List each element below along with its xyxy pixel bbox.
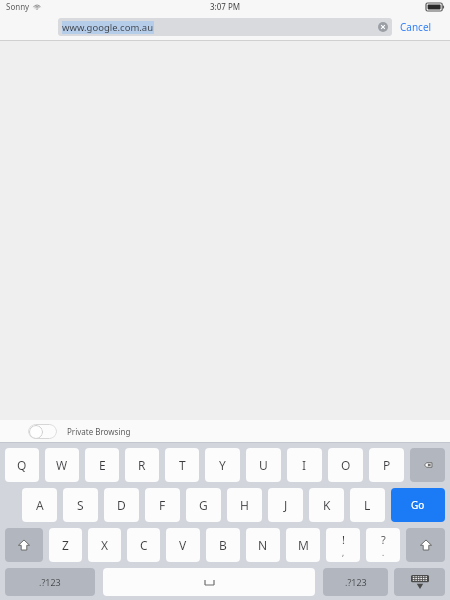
staticText: Z xyxy=(62,537,69,553)
button[interactable]: G xyxy=(186,488,221,522)
staticText: 3:07 PM xyxy=(210,1,241,12)
staticText: J xyxy=(284,497,288,513)
button[interactable]: E xyxy=(85,448,119,482)
staticText: . xyxy=(382,547,385,558)
button[interactable]: .?123 xyxy=(5,568,95,596)
staticText: G xyxy=(199,497,208,513)
button[interactable]: Clear text xyxy=(378,22,388,32)
button[interactable]: W xyxy=(45,448,79,482)
button[interactable]: Q xyxy=(5,448,39,482)
button[interactable]: K xyxy=(309,488,344,522)
staticText: Private Browsing xyxy=(67,426,131,437)
button[interactable]: X xyxy=(88,528,121,562)
staticText: H xyxy=(240,497,249,513)
button[interactable]: C xyxy=(127,528,160,562)
button[interactable]: Go xyxy=(391,488,445,522)
button[interactable]: V xyxy=(166,528,200,562)
button[interactable]: Private Browsing toggle xyxy=(28,424,57,439)
button[interactable]: J xyxy=(268,488,303,522)
button[interactable]: A xyxy=(22,488,57,522)
staticText: X xyxy=(101,537,109,553)
staticText: , xyxy=(342,547,345,558)
staticText: R xyxy=(138,457,146,473)
button[interactable]: L xyxy=(350,488,385,522)
button[interactable]: www.google.com.au xyxy=(58,18,392,36)
staticText: O xyxy=(341,457,351,473)
staticText: ! xyxy=(342,532,345,547)
staticText: V xyxy=(179,537,187,553)
button[interactable]: H xyxy=(227,488,262,522)
staticText: Sonny xyxy=(6,1,30,12)
staticText: U xyxy=(259,457,268,473)
button[interactable]: Space xyxy=(103,568,315,596)
button[interactable]: U xyxy=(246,448,281,482)
button[interactable]: M xyxy=(286,528,320,562)
button[interactable]: Z xyxy=(49,528,82,562)
button[interactable]: N xyxy=(246,528,280,562)
staticText: Go xyxy=(411,498,425,512)
button[interactable]: ? xyxy=(366,528,400,562)
staticText: M xyxy=(298,537,309,553)
button[interactable]: S xyxy=(63,488,98,522)
button[interactable]: Delete xyxy=(410,448,445,482)
staticText: P xyxy=(383,457,391,473)
staticText: .?123 xyxy=(39,576,61,588)
staticText: W xyxy=(56,457,68,473)
button[interactable]: Shift xyxy=(5,528,43,562)
staticText: S xyxy=(77,497,84,513)
staticText: Y xyxy=(219,457,226,473)
staticText: F xyxy=(159,497,166,513)
staticText: ? xyxy=(381,532,386,547)
button[interactable]: R xyxy=(125,448,159,482)
staticText: N xyxy=(258,537,268,553)
staticText: L xyxy=(364,497,371,513)
staticText: B xyxy=(219,537,227,553)
staticText: Q xyxy=(17,457,27,473)
button[interactable]: Hide keyboard xyxy=(394,568,445,596)
staticText: www.google.com.au xyxy=(62,21,154,34)
staticText: .?123 xyxy=(345,576,367,588)
button[interactable]: .?123 xyxy=(323,568,388,596)
staticText: K xyxy=(323,497,331,513)
staticText: I xyxy=(302,457,307,473)
staticText: E xyxy=(99,457,106,473)
button[interactable]: Cancel xyxy=(392,13,440,40)
button[interactable]: Shift xyxy=(406,528,445,562)
button[interactable]: D xyxy=(104,488,139,522)
staticText: T xyxy=(179,457,186,473)
button[interactable]: I xyxy=(287,448,322,482)
button[interactable]: ! xyxy=(326,528,360,562)
button[interactable]: F xyxy=(145,488,180,522)
staticText: A xyxy=(36,497,44,513)
staticText: Cancel xyxy=(400,20,432,34)
button[interactable]: B xyxy=(206,528,240,562)
button[interactable]: O xyxy=(328,448,363,482)
staticText: C xyxy=(140,537,148,553)
staticText: D xyxy=(117,497,126,513)
button[interactable]: Y xyxy=(205,448,240,482)
button[interactable]: P xyxy=(369,448,404,482)
button[interactable]: T xyxy=(165,448,199,482)
